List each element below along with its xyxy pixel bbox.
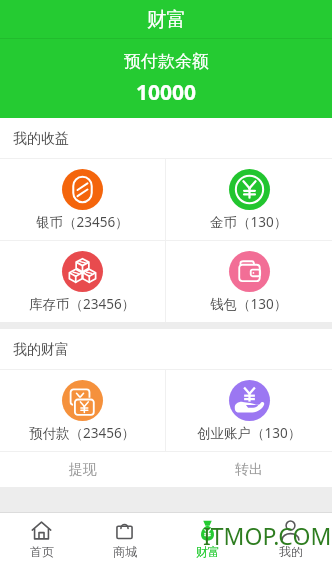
staticText: 预付款余额 [124, 51, 209, 72]
staticText: 首页 [30, 544, 54, 559]
staticText: 我的收益 [13, 130, 69, 148]
button[interactable]: 金币（130） [166, 159, 332, 240]
staticText: 商城 [113, 544, 137, 559]
button[interactable]: 首页 [0, 512, 83, 566]
staticText: 创业账户（130） [197, 424, 302, 442]
staticText: 10000 [136, 78, 197, 107]
staticText: 银币（23456） [36, 213, 129, 231]
button[interactable]: 财富 [166, 512, 249, 566]
staticText: 我的 [279, 544, 303, 559]
staticText: 提现 [69, 461, 97, 479]
staticText: 金币（130） [210, 213, 288, 231]
staticText: 钱包（130） [210, 295, 288, 313]
staticText: 库存币（23456） [29, 295, 136, 313]
staticText: 转出 [235, 461, 263, 479]
button[interactable]: 钱包（130） [166, 241, 332, 322]
button[interactable]: 转出 [166, 452, 332, 487]
staticText: 财富 [147, 7, 186, 32]
button[interactable]: 创业账户（130） [166, 370, 332, 451]
button[interactable]: 商城 [83, 512, 166, 566]
button[interactable]: 库存币（23456） [0, 241, 165, 322]
button[interactable]: 预付款（23456） [0, 370, 165, 451]
staticText: 财富 [196, 544, 220, 559]
button[interactable]: 我的 [249, 512, 332, 566]
staticText: ITMOP.COM [203, 520, 332, 551]
staticText: 预付款（23456） [29, 424, 136, 442]
button[interactable]: 提现 [0, 452, 166, 487]
button[interactable]: 银币（23456） [0, 159, 165, 240]
staticText: 我的财富 [13, 341, 69, 359]
